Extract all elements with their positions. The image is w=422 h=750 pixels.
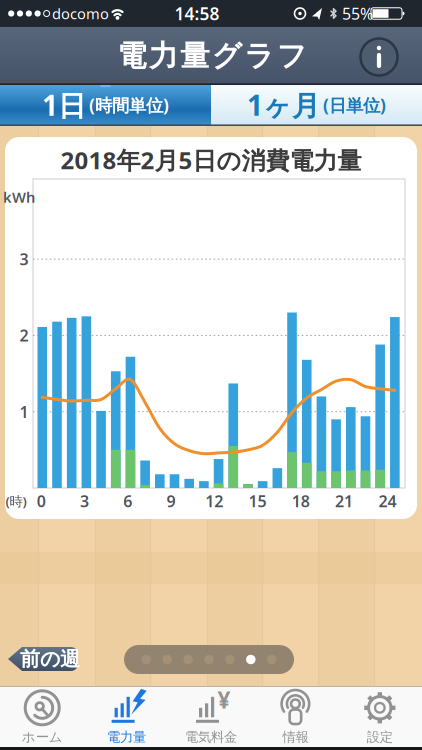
button[interactable]: 設定 (338, 688, 422, 746)
staticText: 55% (342, 3, 373, 24)
staticText: 14:58 (174, 2, 219, 25)
staticText: 3 (80, 490, 89, 512)
button[interactable]: 1日 (0, 85, 211, 125)
staticText: 情報 (282, 729, 308, 745)
staticText: ¥ (217, 685, 230, 715)
staticText: 電気料金 (185, 729, 237, 745)
button[interactable]: 前の週 (8, 647, 78, 671)
staticText: 12 (205, 490, 223, 512)
staticText: 9 (167, 490, 176, 512)
button[interactable]: ホーム (0, 688, 84, 746)
staticText: 2018年2月5日の消費電力量 (60, 144, 361, 176)
staticText: docomo (52, 4, 109, 23)
staticText: kWh (3, 187, 35, 207)
staticText: 24 (378, 490, 396, 512)
button[interactable]: Info (359, 37, 399, 77)
staticText: 電力量 (107, 729, 146, 745)
button[interactable]: ページ (124, 645, 294, 674)
staticText: 3 (19, 248, 28, 270)
staticText: 21 (335, 490, 353, 512)
staticText: 18 (292, 490, 310, 512)
staticText: ホーム (22, 729, 63, 745)
staticText: 0 (37, 490, 46, 512)
staticText: 前の週 (20, 647, 80, 671)
staticText: (時) (5, 492, 26, 510)
staticText: 2 (19, 325, 28, 346)
button[interactable]: 電力量 (84, 688, 169, 746)
button[interactable]: 1ヶ月 (211, 85, 422, 125)
staticText: 電力量グラフ (117, 38, 307, 74)
staticText: (時間単位) (89, 93, 169, 116)
staticText: 6 (123, 490, 132, 512)
button[interactable]: ¥ (169, 688, 253, 746)
staticText: 1 (19, 401, 28, 422)
staticText: 設定 (367, 729, 393, 745)
button[interactable]: 情報 (253, 688, 338, 746)
staticText: (日単位) (323, 93, 386, 116)
staticText: 1日 (42, 86, 86, 124)
staticText: 15 (249, 490, 267, 512)
staticText: 1ヶ月 (247, 86, 320, 124)
